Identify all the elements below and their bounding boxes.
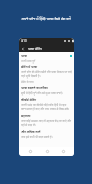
staticText: और अधिक जानें (21, 130, 41, 134)
staticText: सहायता (21, 114, 31, 118)
staticText: सेटिंग के चरण (21, 80, 34, 83)
staticText: भाषा बदलने का तरीका (21, 86, 48, 90)
staticText: अपनी पसंद का कीबोर्ड जोड़ें ताकि हिंदी म… (21, 103, 72, 111)
button[interactable]: Home (24, 147, 36, 156)
button[interactable]: Back (20, 46, 25, 51)
staticText: अगर कोई समस्या आए तो सहायता केंद्र पर जा… (21, 119, 72, 127)
staticText: अपनी भाषा चुनें (21, 59, 36, 62)
staticText: आप इसे कभी भी बदल सकते हैं। (21, 135, 53, 139)
staticText: अपने फोन की सेटिंग खोलें और भाषा विकल्प … (21, 70, 72, 78)
staticText: भाषा सेटिंग (28, 46, 42, 51)
staticText: सूची में हिंदी चुनें और उसे मुख्य भाषा ब… (21, 91, 63, 95)
staticText: 4:10 (21, 39, 27, 43)
staticText: भाषा (21, 54, 27, 58)
button[interactable]: Profile (57, 147, 69, 156)
staticText: कीबोर्ड सेटिंग (21, 98, 37, 102)
staticText: अपने फोन में हिंदी भाषा कैसे सेट करें (6, 16, 86, 21)
button[interactable]: Search (41, 147, 53, 156)
staticText: सेटिंग में भाषा (21, 65, 38, 69)
